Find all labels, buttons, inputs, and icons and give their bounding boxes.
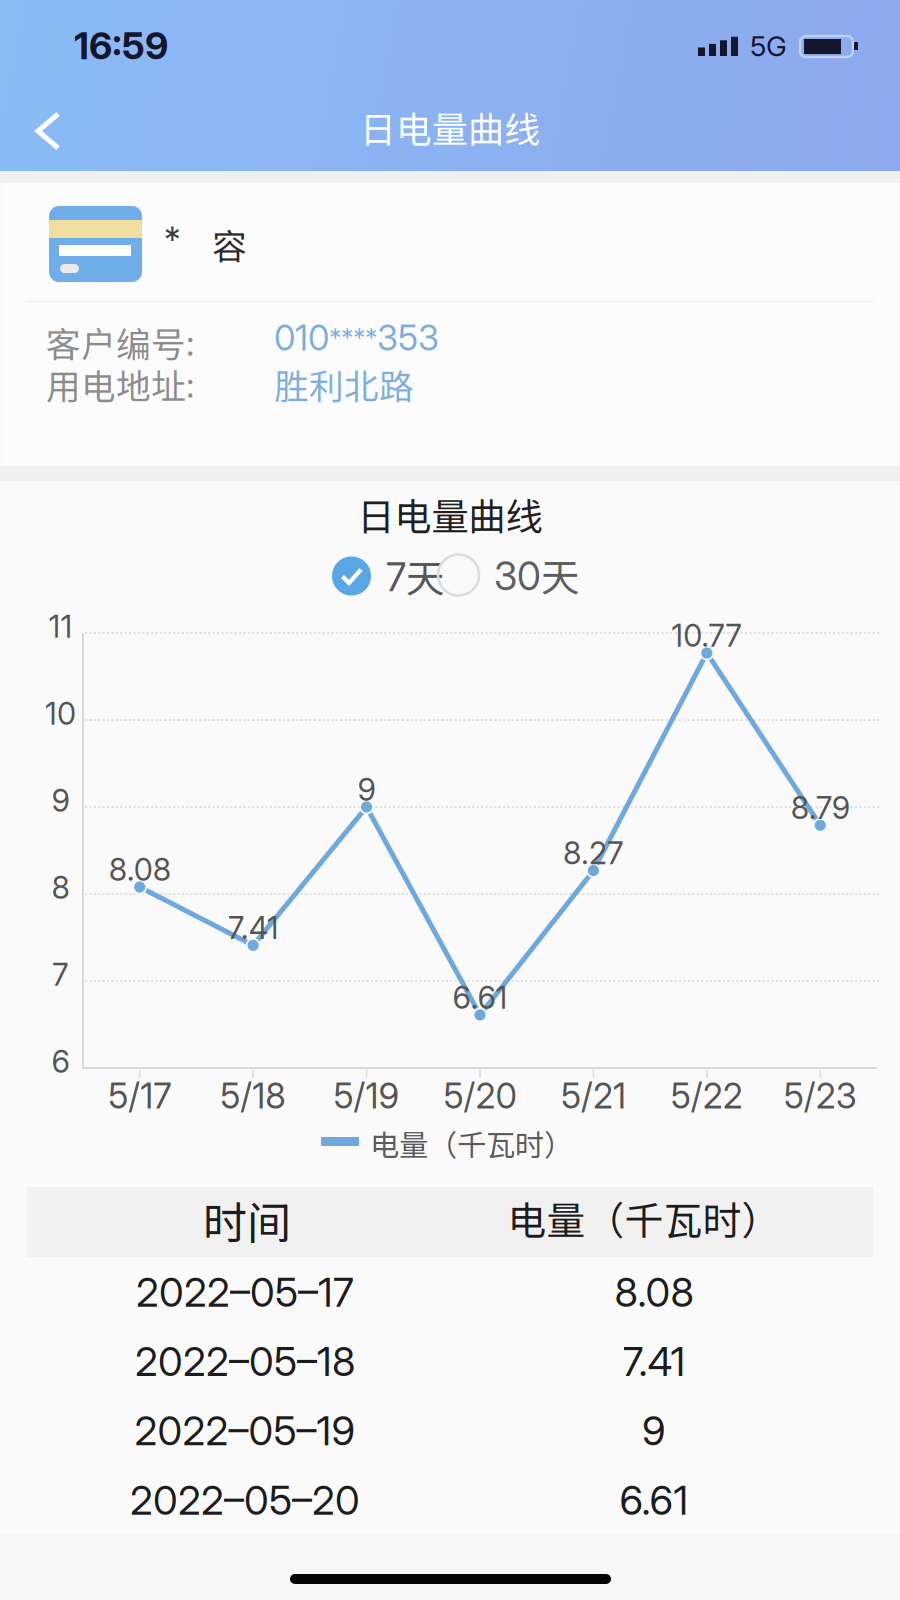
staticText: 客户编号: [46,317,194,367]
staticText: 电量（千瓦时） [370,1122,573,1164]
staticText: 353 [377,317,439,359]
staticText: 8.08 [109,851,171,888]
staticText: 10.77 [671,617,742,654]
staticText: 8.08 [614,1268,693,1316]
staticText: 7.41 [228,909,279,946]
staticText: 日电量曲线 [360,101,540,153]
staticText: 8 [51,869,69,906]
staticText: 8.79 [791,789,850,826]
staticText: * [164,219,181,261]
staticText: 时间 [203,1188,291,1252]
staticText: 9 [642,1407,666,1455]
button[interactable]: 30天 [438,547,580,603]
staticText: 9 [51,782,69,819]
staticText: 6.61 [619,1476,688,1524]
staticText: 010 [274,317,329,359]
staticText: 8.27 [563,834,624,872]
button[interactable]: Back [6,91,102,175]
staticText: 7 [52,956,69,993]
staticText: 30天 [494,547,580,603]
staticText: **** [329,323,377,353]
staticText: 用电地址: [46,359,194,409]
staticText: 2022–05–19 [134,1407,355,1455]
staticText: 16:59 [74,23,168,68]
staticText: 7.41 [622,1337,685,1386]
staticText: 6 [51,1043,69,1080]
staticText: 5/20 [443,1075,516,1117]
staticText: 2022–05–17 [136,1268,354,1316]
staticText: 7天 [386,548,445,604]
staticText: 5/17 [108,1075,171,1117]
staticText: 2022–05–20 [130,1476,360,1524]
staticText: 5/23 [784,1075,857,1117]
button[interactable]: 7天 [332,548,445,604]
staticText: 2022–05–18 [135,1337,355,1386]
staticText: 5/21 [561,1075,626,1117]
staticText: 6.61 [452,979,507,1016]
staticText: 11 [48,608,72,645]
staticText: 9 [358,771,376,808]
staticText: 容 [212,219,247,269]
staticText: 胜利北路 [274,359,414,409]
staticText: 电量（千瓦时） [507,1190,780,1246]
staticText: 5/18 [220,1075,286,1117]
staticText: 日电量曲线 [357,487,542,541]
staticText: 5/22 [671,1075,743,1117]
staticText: 5G [750,29,787,63]
staticText: 5/19 [334,1075,400,1117]
staticText: 10 [45,695,76,732]
